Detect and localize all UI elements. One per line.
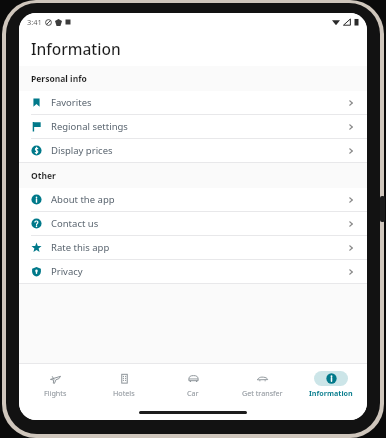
button[interactable]: About the app [19, 188, 367, 211]
staticText: Get transfer [242, 388, 283, 398]
button[interactable]: Regional settings [19, 115, 367, 138]
button[interactable]: Rate this app [19, 236, 367, 259]
staticText: 3:41 [27, 17, 42, 27]
button[interactable]: Display prices [19, 139, 367, 162]
button[interactable]: Contact us [19, 212, 367, 235]
staticText: Car [187, 388, 199, 398]
button[interactable]: Hotels [91, 364, 157, 404]
staticText: Favorites [51, 96, 92, 109]
staticText: Flights [44, 388, 67, 398]
staticText: Display prices [51, 144, 113, 157]
staticText: Privacy [51, 265, 83, 278]
staticText: Rate this app [51, 241, 110, 254]
staticText: Contact us [51, 217, 99, 230]
button[interactable]: Get transfer [229, 364, 295, 404]
staticText: About the app [51, 193, 115, 206]
button[interactable]: Information [298, 364, 364, 404]
staticText: Hotels [113, 388, 135, 398]
button[interactable]: Car [160, 364, 226, 404]
staticText: Regional settings [51, 120, 128, 133]
button[interactable]: Flights [22, 364, 88, 404]
staticText: Personal info [31, 73, 87, 85]
button[interactable]: Privacy [19, 260, 367, 283]
staticText: Information [31, 38, 121, 59]
button[interactable]: Favorites [19, 91, 367, 114]
staticText: Other [31, 170, 56, 182]
staticText: Information [309, 388, 353, 398]
